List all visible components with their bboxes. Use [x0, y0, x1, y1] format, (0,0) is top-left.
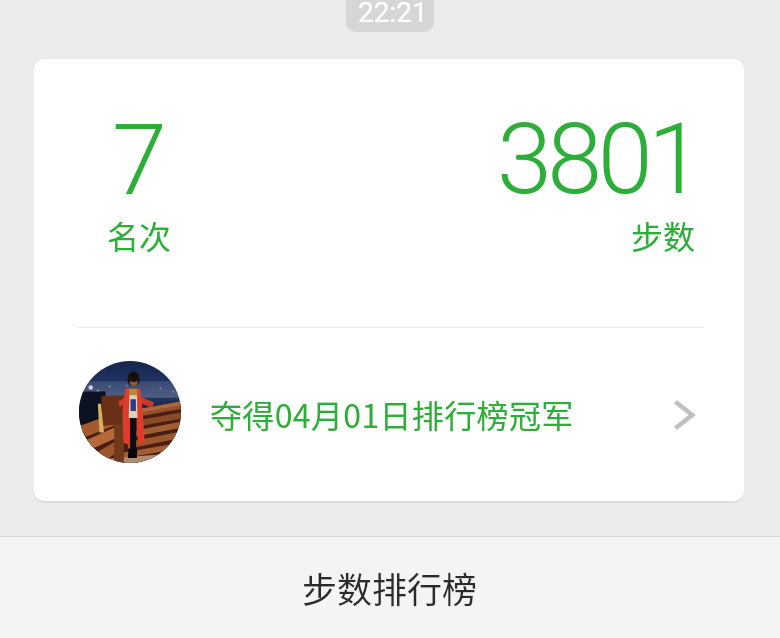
staticText: 名次: [107, 212, 172, 258]
button[interactable]: 步数排行榜: [0, 537, 780, 638]
staticText: 夺得04月01日排行榜冠军: [210, 391, 574, 437]
button[interactable]: 3801: [464, 89, 704, 319]
staticText: 7: [112, 102, 167, 218]
staticText: 22:21: [358, 0, 428, 29]
staticText: 步数排行榜: [302, 562, 478, 613]
button[interactable]: 7: [74, 89, 274, 319]
other: 查看排行榜详情: [661, 394, 703, 436]
button[interactable]: 夺得04月01日排行榜冠军: [34, 328, 744, 501]
staticText: 3801: [497, 101, 699, 217]
staticText: 步数: [631, 212, 696, 258]
